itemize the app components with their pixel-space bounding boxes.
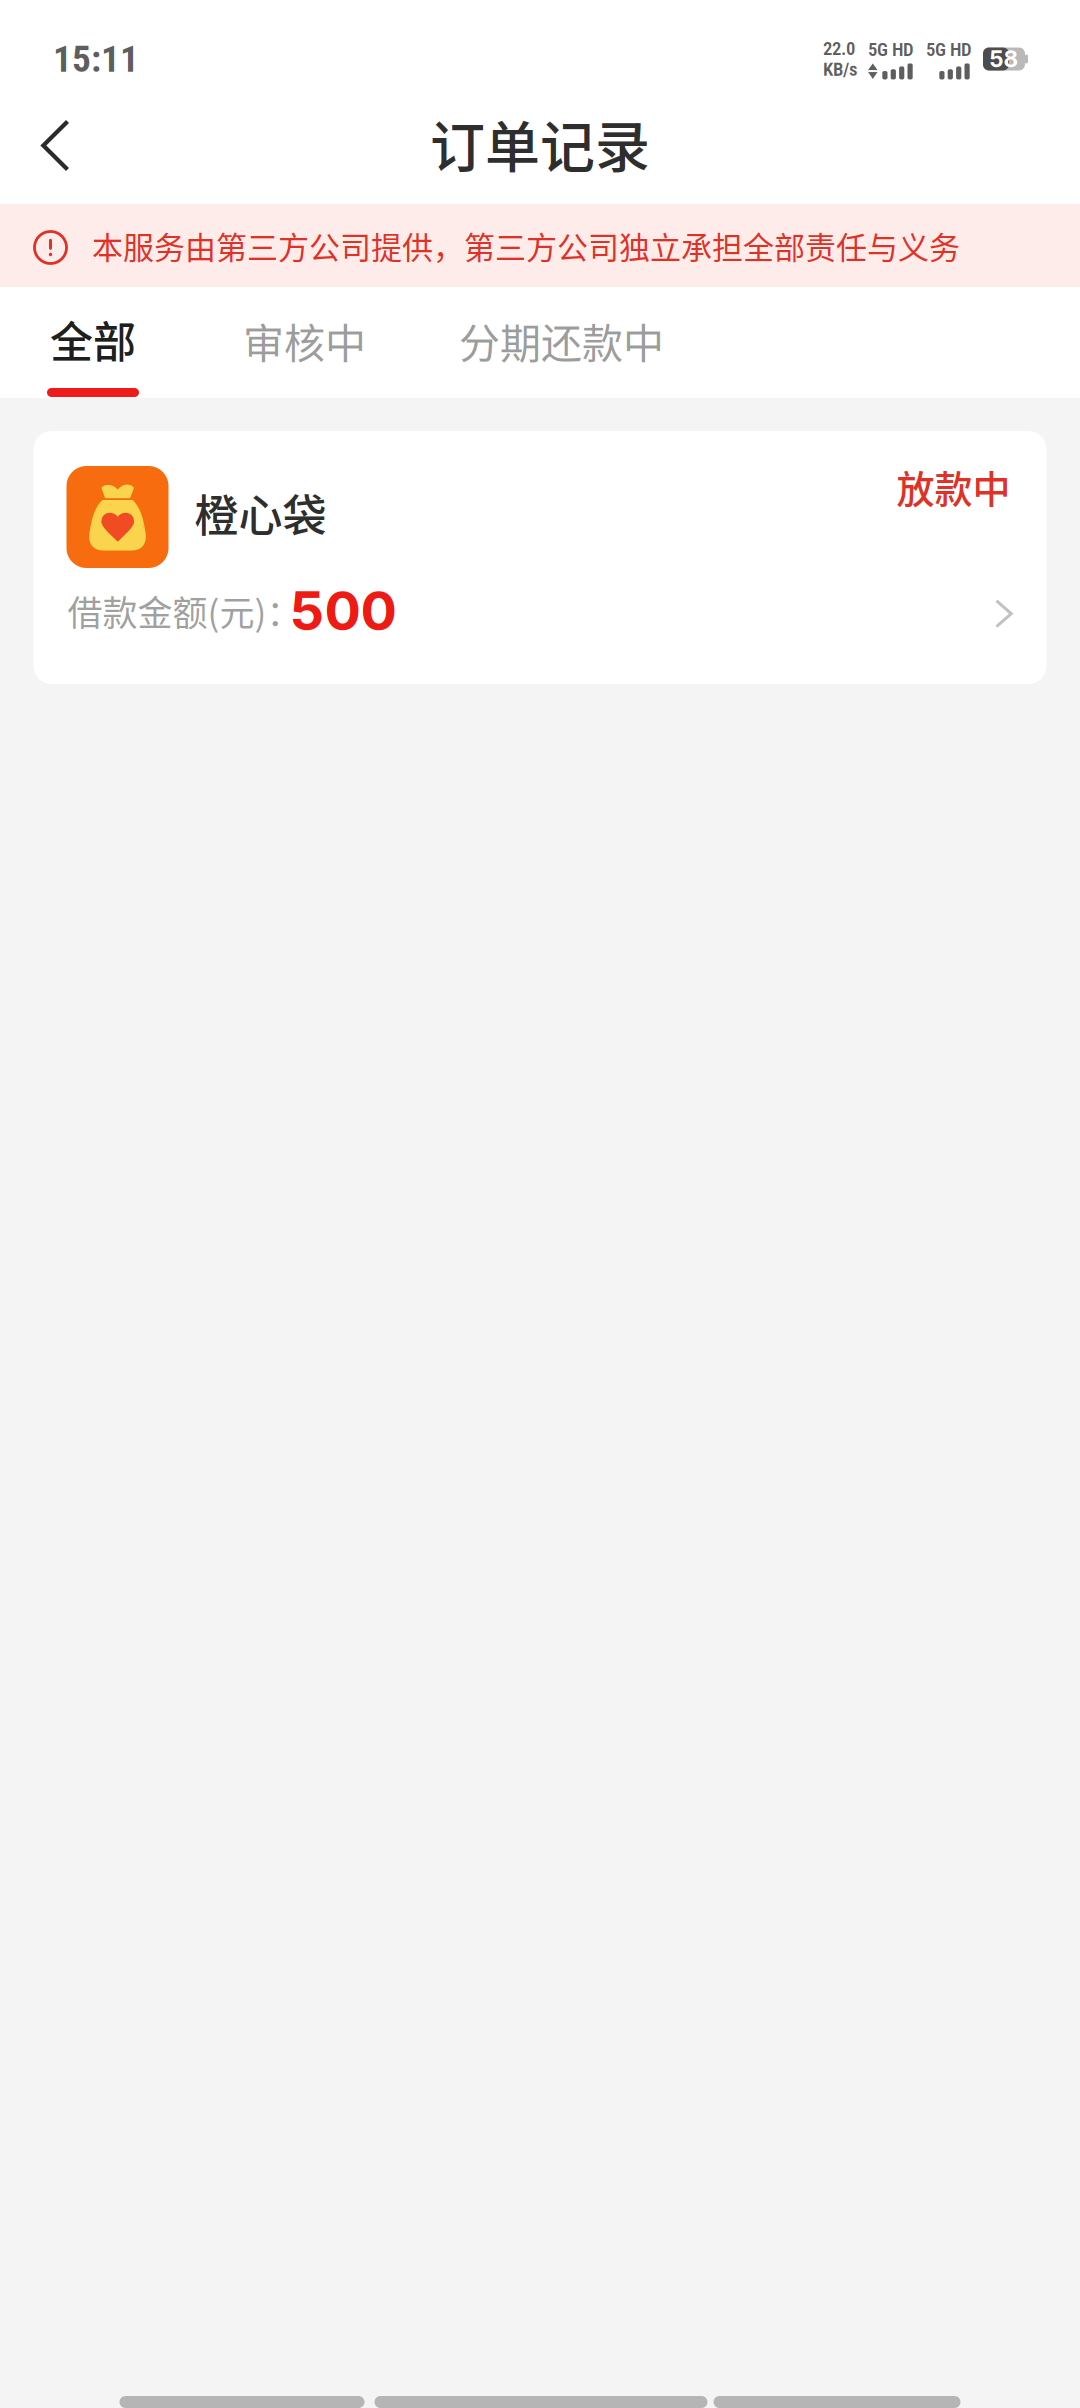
staticText: 5G HD <box>926 39 972 60</box>
button[interactable]: 分期还款中 <box>459 287 664 398</box>
staticText: 橙心袋 <box>194 481 326 545</box>
button[interactable]: 橙心袋 <box>33 431 1046 684</box>
staticText: 15:11 <box>53 37 139 81</box>
staticText: 本服务由第三方公司提供，第三方公司独立承担全部责任与义务 <box>92 223 960 268</box>
staticText: 22.0 <box>823 38 855 59</box>
button[interactable]: 全部 <box>47 287 139 398</box>
staticText: 500 <box>289 578 396 643</box>
staticText: 审核中 <box>243 311 366 370</box>
staticText: 5G HD <box>868 39 914 60</box>
staticText: 放款中 <box>896 459 1010 514</box>
staticText: KB/s <box>823 58 857 80</box>
staticText: 借款金额(元)： <box>67 585 301 636</box>
button[interactable]: 返回 <box>0 105 114 203</box>
staticText: 分期还款中 <box>459 311 664 370</box>
button[interactable]: 审核中 <box>243 287 366 398</box>
staticText: 订单记录 <box>430 103 650 183</box>
staticText: 全部 <box>50 308 136 370</box>
staticText: 58 <box>989 45 1018 73</box>
